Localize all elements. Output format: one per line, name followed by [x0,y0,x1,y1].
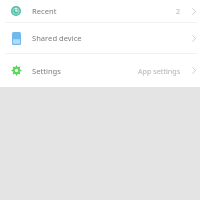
staticText: Shared device [32,33,82,43]
button[interactable]: Recent [0,0,200,22]
staticText: Settings [32,66,61,76]
staticText: App settings [138,66,181,76]
staticText: 2 [176,6,181,16]
other: Settings [0,65,32,76]
button[interactable]: Settings [0,54,200,87]
other: Shared device [0,32,32,45]
button[interactable]: Shared device [0,23,200,53]
other: Recent [0,6,32,16]
staticText: Recent [32,6,57,16]
